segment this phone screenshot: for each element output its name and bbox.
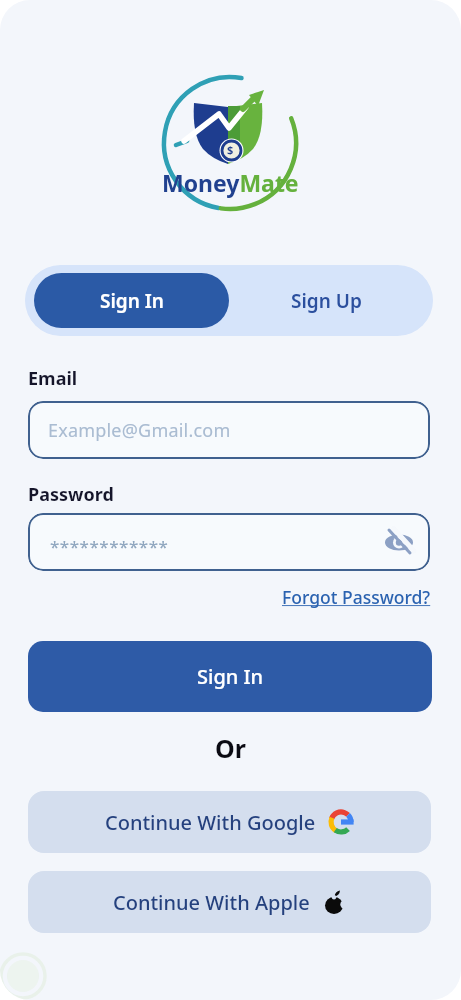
staticText: Continue With Apple <box>113 889 310 916</box>
button[interactable]: Sign In <box>34 273 229 328</box>
staticText: Sign In <box>197 663 264 690</box>
staticText: Continue With Google <box>105 809 316 836</box>
button[interactable]: Example@Gmail.com <box>28 401 430 459</box>
button[interactable]: Sign In <box>28 641 432 712</box>
button[interactable]: ************ <box>28 513 430 571</box>
button[interactable] <box>382 525 416 559</box>
staticText: Or <box>215 731 246 765</box>
staticText: Email <box>28 366 78 391</box>
staticText: ************ <box>50 535 169 558</box>
staticText: Sign In <box>100 288 164 314</box>
staticText: $ <box>227 142 234 157</box>
staticText: MoneyMate <box>162 167 299 198</box>
staticText: Password <box>28 482 114 507</box>
button[interactable]: Continue With Apple <box>28 871 431 933</box>
button[interactable]: Sign Up <box>229 273 424 328</box>
staticText: Sign Up <box>291 288 362 314</box>
staticText: Example@Gmail.com <box>48 418 231 443</box>
button[interactable]: Continue With Google <box>28 791 431 853</box>
button[interactable]: Forgot Password? <box>282 585 431 609</box>
